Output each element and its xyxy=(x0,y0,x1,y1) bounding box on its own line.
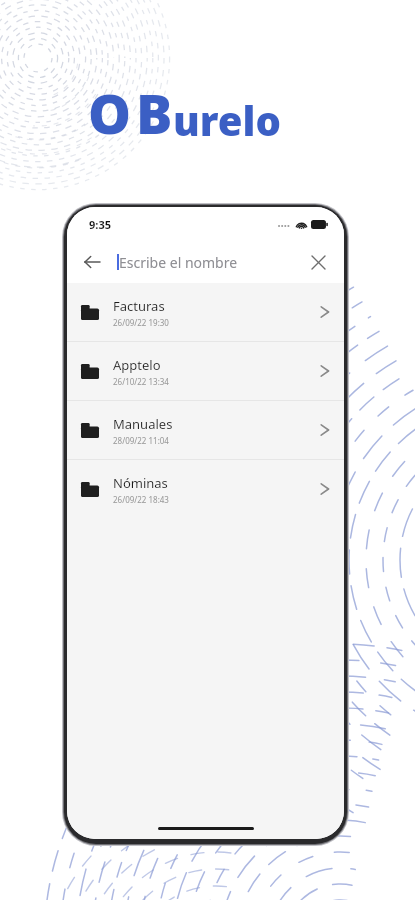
button[interactable]: Facturas xyxy=(67,283,344,341)
button[interactable]: Nóminas xyxy=(67,460,344,518)
staticText: 26/10/22 13:34 xyxy=(113,376,169,387)
button[interactable]: Escribe el nombre xyxy=(109,241,302,283)
staticText: urelo xyxy=(173,93,281,147)
staticText: 26/09/22 18:43 xyxy=(113,494,169,505)
staticText: 9:35 xyxy=(89,217,111,232)
staticText: O xyxy=(88,76,132,150)
staticText: 28/09/22 11:04 xyxy=(113,435,169,446)
staticText: B xyxy=(136,76,173,150)
staticText: Manuales xyxy=(113,415,173,433)
staticText: Nóminas xyxy=(113,474,168,492)
staticText: Escribe el nombre xyxy=(119,253,238,272)
button[interactable]: Manuales xyxy=(67,401,344,459)
staticText: Apptelo xyxy=(113,356,161,374)
button[interactable]: Back xyxy=(75,245,109,279)
button[interactable]: Apptelo xyxy=(67,342,344,400)
staticText: 26/09/22 19:30 xyxy=(113,317,169,328)
staticText: Facturas xyxy=(113,297,165,315)
button[interactable]: Clear xyxy=(302,246,334,278)
